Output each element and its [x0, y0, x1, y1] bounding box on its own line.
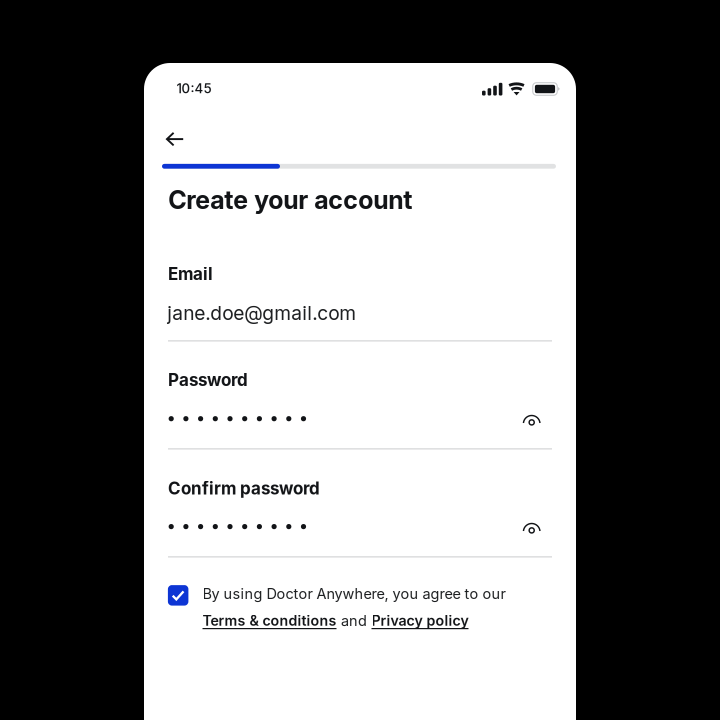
- staticText: Privacy policy: [371, 612, 468, 629]
- staticText: and: [341, 612, 367, 629]
- staticText: Password: [168, 369, 248, 390]
- button[interactable]: Show confirm password: [515, 511, 549, 545]
- staticText: Email: [168, 263, 213, 284]
- button[interactable]: Show password: [515, 403, 549, 437]
- staticText: Terms & conditions: [202, 612, 336, 629]
- staticText: By using Doctor Anywhere, you agree to o…: [202, 585, 505, 602]
- button[interactable]: Back: [156, 116, 204, 160]
- staticText: 10:45: [177, 80, 212, 96]
- button[interactable]: Privacy policy: [371, 612, 468, 629]
- staticText: Create your account: [168, 185, 412, 215]
- button[interactable]: Terms & conditions: [202, 612, 336, 629]
- staticText: jane.doe@gmail.com: [167, 301, 356, 325]
- button[interactable]: Agree to terms and conditions: [162, 579, 194, 611]
- staticText: Confirm password: [168, 478, 320, 498]
